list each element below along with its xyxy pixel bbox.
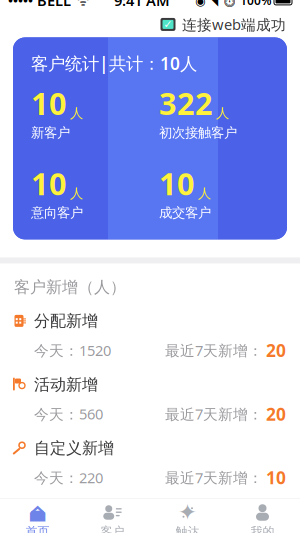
staticText: 今天：1520 (34, 340, 111, 360)
staticText: 人 (198, 185, 211, 202)
staticText: 人 (70, 185, 83, 202)
staticText: 今天：560 (34, 404, 103, 424)
staticText: ✓ (163, 18, 172, 30)
button[interactable]: 客户 (75, 499, 150, 533)
staticText: 新客户 (31, 125, 70, 141)
staticText: 最近7天新增： (165, 468, 263, 487)
staticText: ••••• (8, 0, 33, 9)
button[interactable]: ✦ (150, 499, 225, 533)
staticText: 客户 (100, 524, 124, 533)
button[interactable]: ⌂ (0, 499, 75, 533)
staticText: 20 (266, 339, 286, 362)
staticText: 9:41 AM (114, 0, 170, 10)
staticText: 成交客户 (159, 205, 211, 221)
button[interactable]: 活动新增 (0, 371, 300, 434)
staticText: ✦ (178, 499, 197, 525)
staticText: ◉ ◥ ⏱ 100% (195, 0, 272, 8)
staticText: 10 (31, 163, 67, 204)
staticText: 连接web端成功 (182, 15, 286, 34)
staticText: 客户统计|共计：10人 (31, 52, 197, 75)
staticText: 10 (159, 163, 195, 204)
staticText: 客户新增（人） (14, 277, 126, 297)
staticText: ᯤ (71, 0, 89, 9)
button[interactable]: 分配新增 (0, 307, 300, 371)
staticText: 10 (266, 466, 286, 489)
staticText: 意向客户 (31, 205, 83, 221)
staticText: 我的 (250, 524, 274, 533)
staticText: 人 (216, 105, 229, 122)
staticText: 分配新增 (34, 311, 98, 331)
staticText: 自定义新增 (34, 438, 114, 458)
staticText: BELL (33, 0, 71, 10)
staticText: 人 (70, 105, 83, 122)
staticText: 最近7天新增： (165, 404, 263, 424)
staticText: 322 (159, 83, 213, 123)
staticText: 最近7天新增： (165, 340, 263, 360)
staticText: 首页 (25, 524, 49, 533)
staticText: ⌂ (28, 497, 47, 527)
staticText: 20 (266, 402, 286, 425)
button[interactable]: ✓ (160, 11, 286, 38)
staticText: 活动新增 (34, 375, 98, 394)
button[interactable]: 自定义新增 (0, 434, 300, 498)
staticText: 今天：220 (34, 468, 103, 487)
staticText: 触达 (175, 524, 199, 533)
staticText: 初次接触客户 (159, 125, 237, 141)
staticText: 10 (31, 83, 67, 123)
button[interactable]: 我的 (225, 499, 300, 533)
